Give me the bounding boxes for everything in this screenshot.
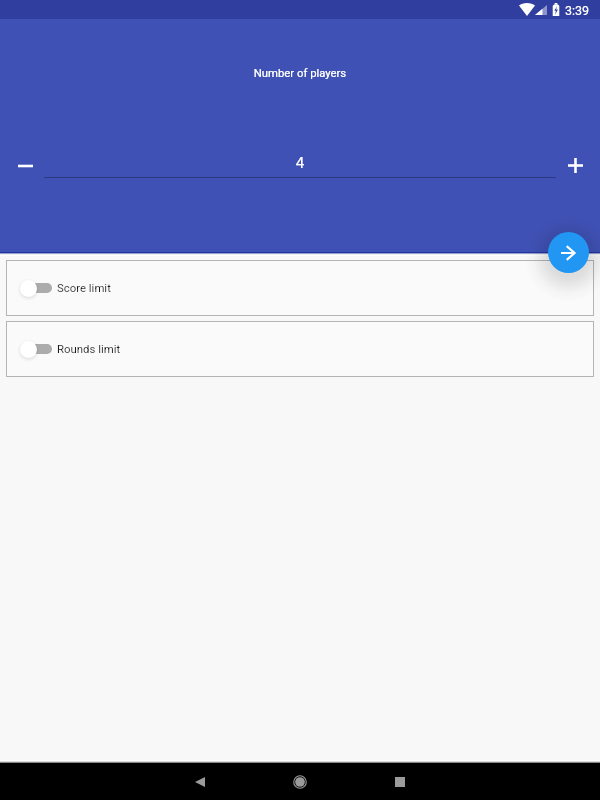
staticText: Rounds limit [57,342,121,355]
button[interactable]: Add player [555,145,595,185]
button[interactable]: Next [548,232,589,273]
button[interactable]: Remove player [5,146,45,186]
button[interactable]: Back [180,763,220,800]
staticText: Number of players [0,67,600,80]
button[interactable]: Score limit toggle, off [20,276,54,300]
staticText: Score limit [57,281,111,294]
button[interactable]: Rounds limit toggle, off [6,321,594,377]
button[interactable]: Home [280,763,320,800]
staticText: 3:39 [565,3,590,18]
button[interactable]: Recent apps [380,763,420,800]
staticText: 4 [0,154,600,172]
button[interactable]: Rounds limit toggle, off [20,337,54,361]
button[interactable]: Score limit toggle, off [6,260,594,316]
